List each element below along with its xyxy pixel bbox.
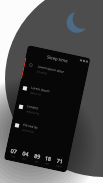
staticText: Consect <box>27 104 39 111</box>
staticText: sit amet <box>36 69 48 76</box>
staticText: Lorem ipsum dolor <box>37 64 64 74</box>
staticText: 07 <box>10 147 18 155</box>
staticText: bpm <box>56 164 63 168</box>
staticText: hrs <box>11 154 16 158</box>
button[interactable]: Consect <box>13 97 79 128</box>
button[interactable]: 04 <box>21 149 30 160</box>
staticText: rem <box>45 161 50 165</box>
staticText: pts <box>35 159 39 163</box>
button[interactable]: 71 <box>55 157 64 168</box>
staticText: adipiscing <box>26 109 40 116</box>
button[interactable]: 18 <box>44 154 52 165</box>
staticText: Lorem ipsum <box>31 86 50 93</box>
staticText: Sleep time <box>46 54 69 65</box>
staticText: 04 <box>22 149 30 158</box>
staticText: dolor sit <box>30 90 41 97</box>
staticText: 89 <box>33 152 42 160</box>
staticText: 18 <box>44 154 53 162</box>
staticText: eiusmod <box>22 128 34 134</box>
button[interactable]: 07 <box>9 147 18 158</box>
button[interactable]: Elit sed do <box>9 115 76 146</box>
button[interactable]: Lorem ipsum dolor <box>21 58 88 91</box>
staticText: Elit sed do <box>23 123 38 130</box>
button[interactable]: Lorem ipsum <box>17 78 83 109</box>
button[interactable]: 89 <box>33 152 42 163</box>
staticText: 71 <box>56 157 64 165</box>
staticText: min <box>22 156 28 160</box>
